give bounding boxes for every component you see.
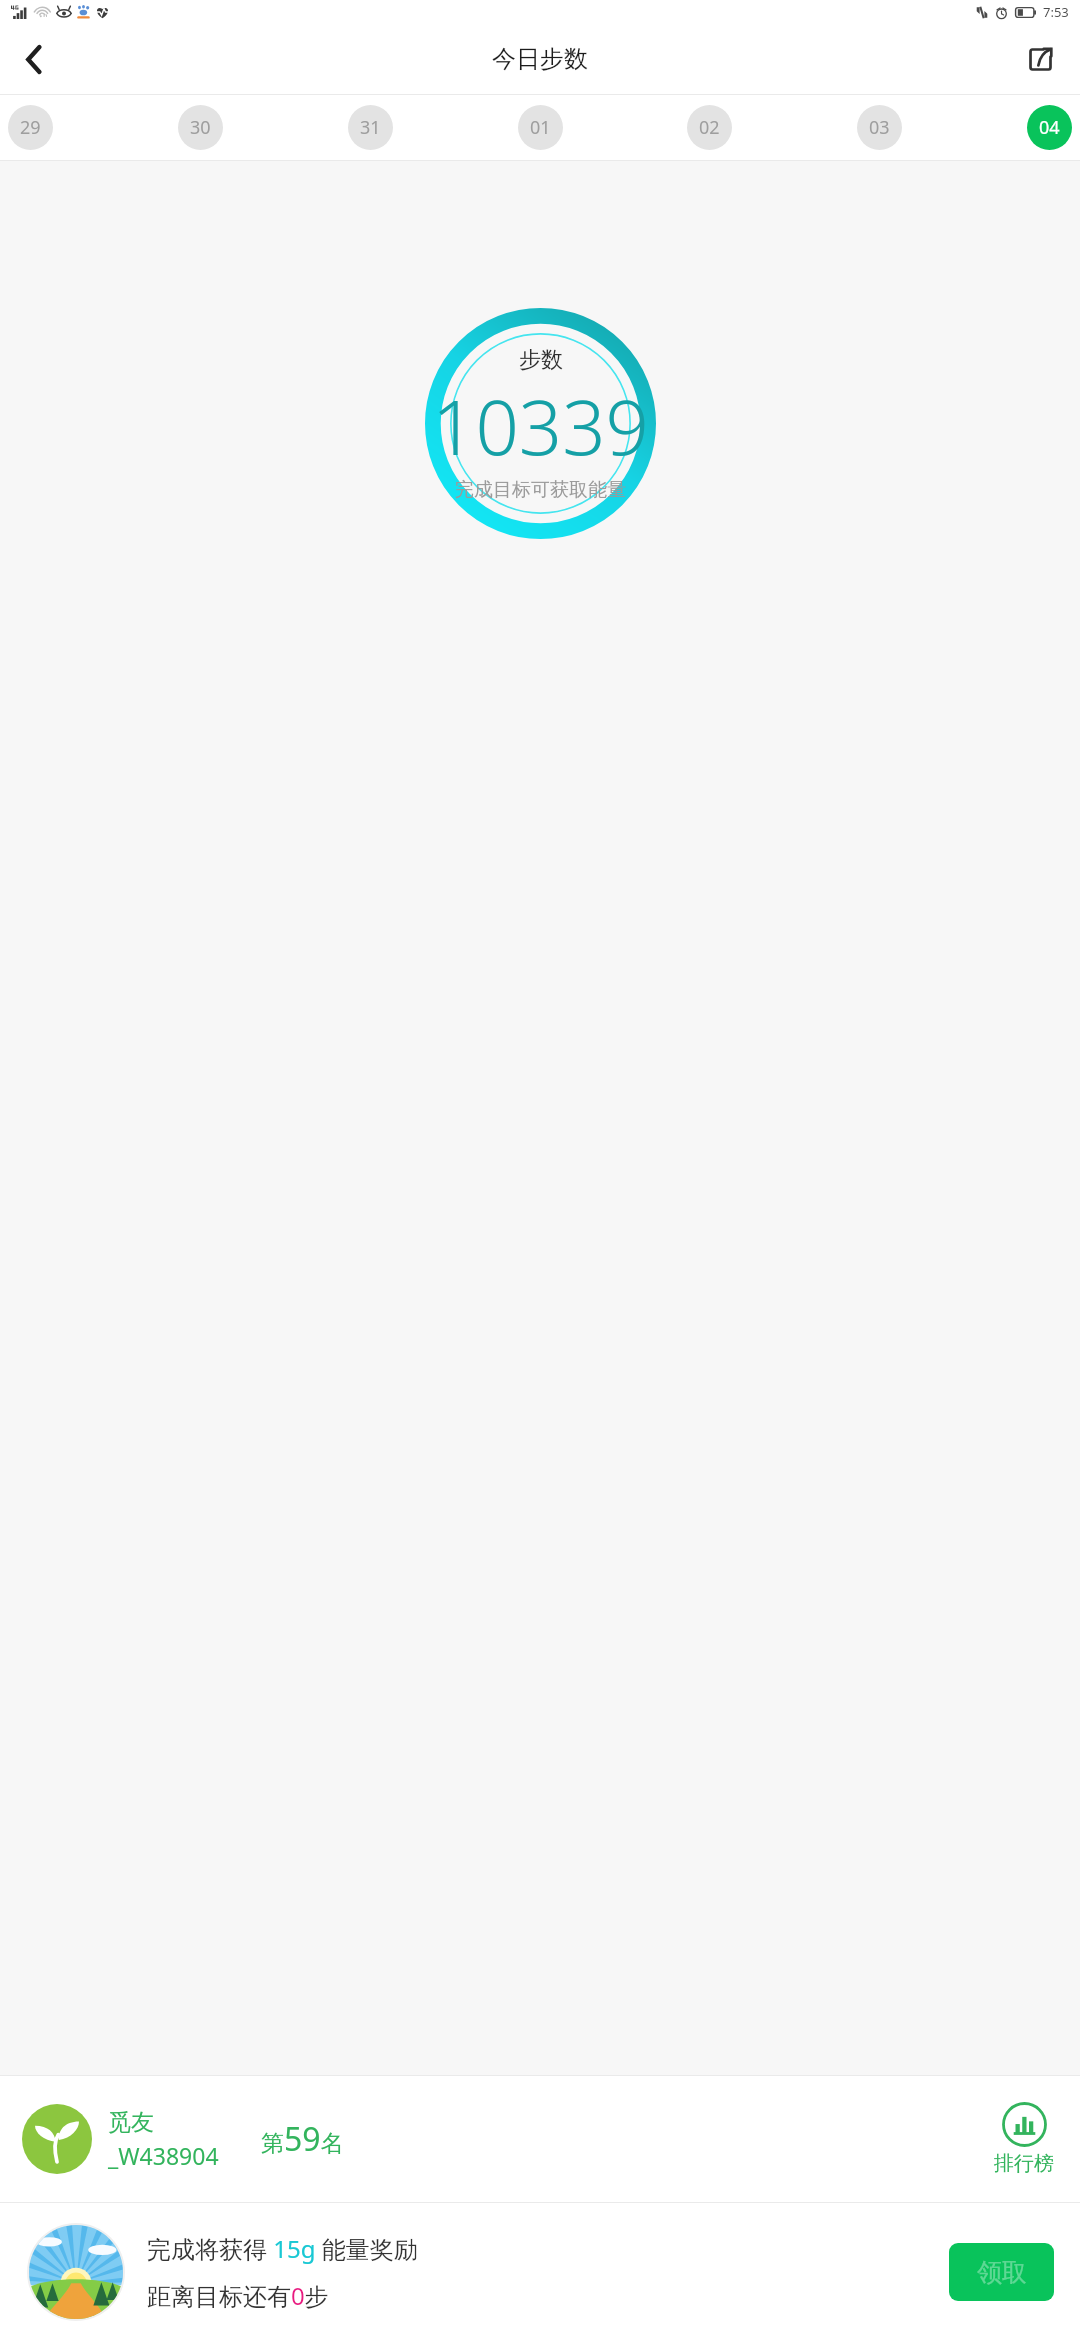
- staticText: 29: [20, 115, 41, 140]
- staticText: 完成将获得 15g 能量奖励: [147, 2232, 418, 2265]
- staticText: 今日步数: [492, 44, 588, 74]
- staticText: _W438904: [108, 2140, 219, 2171]
- button[interactable]: 排行榜: [988, 2102, 1060, 2176]
- staticText: 7:53: [1043, 3, 1069, 21]
- button[interactable]: 03: [857, 105, 902, 150]
- button[interactable]: 31: [348, 105, 393, 150]
- staticText: 觅友: [108, 2108, 154, 2137]
- button[interactable]: 02: [687, 105, 732, 150]
- staticText: 第59名: [261, 2117, 344, 2161]
- staticText: 03: [869, 115, 890, 140]
- button[interactable]: 30: [178, 105, 223, 150]
- staticText: 10339: [432, 374, 649, 478]
- staticText: 领取: [977, 2257, 1027, 2288]
- staticText: 31: [360, 115, 381, 140]
- staticText: 01: [530, 115, 551, 140]
- staticText: 距离目标还有0步: [147, 2279, 329, 2312]
- button[interactable]: 领取: [949, 2243, 1054, 2301]
- staticText: 04: [1039, 115, 1060, 140]
- staticText: 30: [190, 115, 211, 140]
- staticText: 排行榜: [994, 2151, 1054, 2176]
- button[interactable]: Share: [1013, 32, 1067, 86]
- staticText: 步数: [519, 346, 563, 374]
- button[interactable]: Back: [7, 32, 61, 86]
- button[interactable]: 04: [1027, 105, 1072, 150]
- button[interactable]: 觅友: [0, 2076, 1080, 2202]
- button[interactable]: 29: [8, 105, 53, 150]
- staticText: 02: [699, 115, 720, 140]
- button[interactable]: 01: [518, 105, 563, 150]
- staticText: 完成目标可获取能量: [455, 478, 626, 502]
